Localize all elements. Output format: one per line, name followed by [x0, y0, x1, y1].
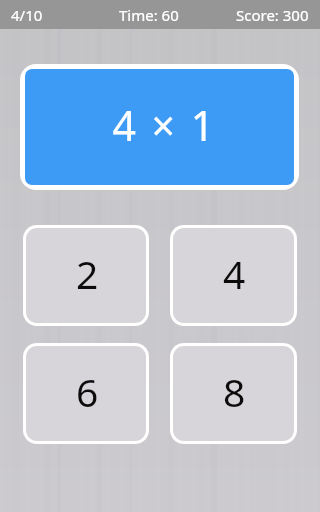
staticText: 6: [76, 365, 99, 418]
staticText: 4 × 1: [112, 97, 217, 153]
button[interactable]: 6: [26, 346, 146, 441]
staticText: 4/10: [11, 5, 43, 25]
button[interactable]: 2: [26, 228, 146, 323]
staticText: Score: 300: [236, 5, 309, 25]
staticText: 4: [223, 247, 246, 300]
button[interactable]: 4 × 1: [25, 69, 294, 185]
staticText: 8: [223, 365, 246, 418]
staticText: 2: [76, 247, 99, 300]
button[interactable]: 4: [173, 228, 294, 323]
staticText: Time: 60: [119, 5, 179, 25]
button[interactable]: 8: [173, 346, 294, 441]
